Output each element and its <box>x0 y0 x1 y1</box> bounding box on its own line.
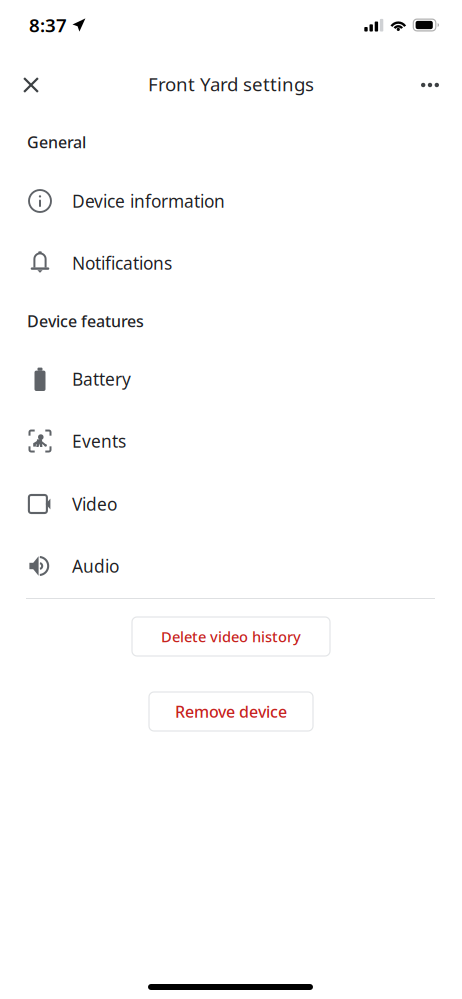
button[interactable]: Device information <box>0 170 462 232</box>
button[interactable]: Delete video history <box>132 617 330 656</box>
staticText: Battery <box>72 367 131 390</box>
button[interactable]: Events <box>0 410 462 472</box>
staticText: Device features <box>27 310 144 332</box>
staticText: 8:37 <box>29 13 67 37</box>
button[interactable]: Video <box>0 473 462 535</box>
button[interactable]: Remove device <box>149 692 313 731</box>
button[interactable]: Audio <box>0 535 462 597</box>
staticText: Video <box>72 492 117 515</box>
staticText: Delete video history <box>161 627 301 646</box>
staticText: Remove device <box>175 701 287 722</box>
staticText: Notifications <box>72 251 172 274</box>
staticText: Front Yard settings <box>148 72 314 96</box>
staticText: Device information <box>72 189 225 212</box>
staticText: Events <box>72 429 126 452</box>
button[interactable]: More options <box>408 63 452 107</box>
button[interactable]: Battery <box>0 348 462 410</box>
button[interactable]: Notifications <box>0 232 462 294</box>
staticText: Audio <box>72 554 119 577</box>
button[interactable]: Close <box>9 63 53 107</box>
staticText: General <box>27 131 86 153</box>
